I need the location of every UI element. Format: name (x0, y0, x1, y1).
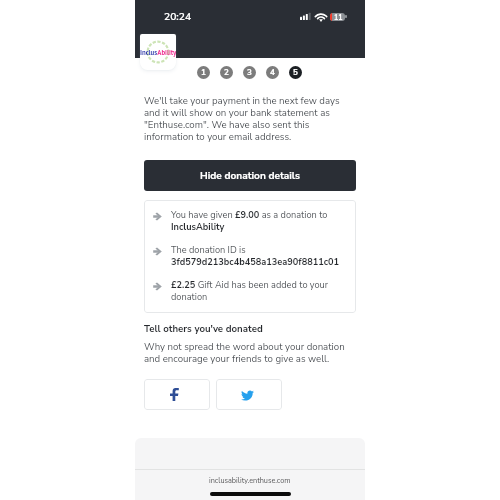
staticText: The donation ID is 3fd579d213bc4b458a13e… (171, 244, 340, 268)
staticText: 3 (247, 67, 252, 78)
staticText: Why not spread the word about your donat… (144, 340, 345, 366)
button[interactable]: Share on Facebook (144, 379, 210, 410)
staticText: InclusAbility (140, 47, 176, 58)
staticText: You have given £9.00 as a donation to In… (171, 209, 328, 233)
staticText: Hide donation details (200, 169, 300, 183)
staticText: 5 (293, 67, 298, 78)
staticText: We'll take your payment in the next few … (144, 94, 340, 144)
button[interactable]: Hide donation details (144, 160, 356, 191)
button[interactable]: Share on Twitter (216, 379, 282, 410)
staticText: inclusability.enthuse.com (209, 476, 291, 486)
staticText: 1 (201, 67, 206, 78)
button[interactable]: 2 (220, 66, 233, 79)
staticText: £2.25 Gift Aid has been added to your do… (171, 279, 329, 303)
button[interactable]: 5 (289, 66, 302, 79)
button[interactable]: 3 (243, 66, 256, 79)
staticText: 11 (334, 13, 343, 21)
staticText: 4 (270, 67, 275, 78)
button[interactable]: 1 (197, 66, 210, 79)
staticText: Tell others you've donated (144, 322, 263, 335)
staticText: 2 (224, 67, 229, 78)
staticText: 20:24 (164, 10, 192, 24)
button[interactable]: 4 (266, 66, 279, 79)
